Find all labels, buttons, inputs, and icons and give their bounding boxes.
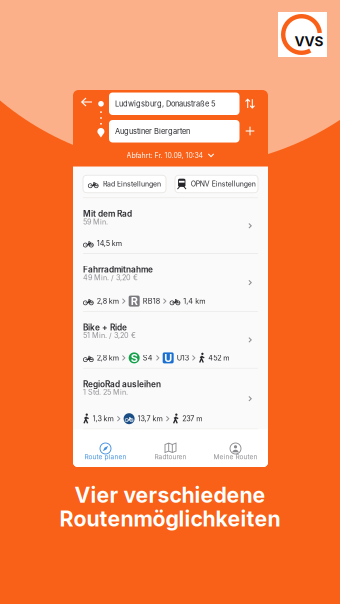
staticText: 237 m <box>182 414 202 423</box>
button[interactable]: Swap start and destination <box>240 94 260 114</box>
staticText: 1,3 km <box>93 414 114 423</box>
staticText: 49 Min. / 3,20 € <box>83 273 138 282</box>
button[interactable]: Radtouren <box>138 429 203 468</box>
staticText: 1,4 km <box>183 297 205 305</box>
staticText: 14,5 km <box>97 239 122 248</box>
staticText: RegioRad ausleihen <box>83 379 161 389</box>
staticText: 2,8 km <box>97 297 119 305</box>
staticText: Fahrradmitnahme <box>83 265 153 275</box>
staticText: 13,7 km <box>138 414 163 423</box>
button[interactable]: Add via stop <box>240 121 260 141</box>
staticText: VVS <box>294 33 323 49</box>
staticText: 51 Min. / 3,20 € <box>83 331 136 340</box>
button[interactable]: ÖPNV Einstellungen <box>175 175 258 193</box>
staticText: U13 <box>177 353 189 362</box>
staticText: Ludwigsburg, Donaustraße 5 <box>115 99 216 108</box>
button[interactable]: Ludwigsburg, Donaustraße 5 <box>109 92 239 115</box>
staticText: S <box>131 351 138 364</box>
button[interactable]: Rad Einstellungen <box>83 175 166 193</box>
staticText: S4 <box>143 353 153 362</box>
button[interactable]: Fahrradmitnahme <box>73 254 268 311</box>
staticText: 1 Std. 25 Min. <box>83 388 128 396</box>
staticText: 59 Min. <box>83 217 108 226</box>
button[interactable]: RegioRad ausleihen <box>73 369 268 429</box>
staticText: Abfahrt: Fr. 10.09, 10:34 <box>126 151 202 160</box>
staticText: Routenmöglichkeiten <box>59 506 280 532</box>
staticText: ÖPNV Einstellungen <box>191 180 256 188</box>
button[interactable]: Meine Routen <box>203 429 268 468</box>
staticText: R <box>131 294 138 308</box>
staticText: 452 m <box>208 353 229 362</box>
staticText: 2,8 km <box>97 353 119 362</box>
staticText: RB18 <box>143 297 160 305</box>
staticText: Bike + Ride <box>83 322 127 332</box>
button[interactable]: Bike + Ride <box>73 312 268 368</box>
staticText: Mit dem Rad <box>83 209 132 219</box>
button[interactable]: Augustiner Biergarten <box>109 120 239 142</box>
staticText: U <box>164 351 172 364</box>
staticText: Vier verschiedene <box>74 482 265 508</box>
button[interactable]: Back <box>76 92 98 112</box>
staticText: Rad Einstellungen <box>103 180 161 188</box>
staticText: Radtouren <box>154 453 186 461</box>
staticText: Augustiner Biergarten <box>115 127 190 136</box>
staticText: Meine Routen <box>213 453 257 461</box>
staticText: Route planen <box>84 453 126 461</box>
button[interactable]: Mit dem Rad <box>73 198 268 253</box>
button[interactable]: Route planen <box>73 429 138 468</box>
button[interactable]: Abfahrt: Fr. 10.09, 10:34 <box>73 147 268 163</box>
